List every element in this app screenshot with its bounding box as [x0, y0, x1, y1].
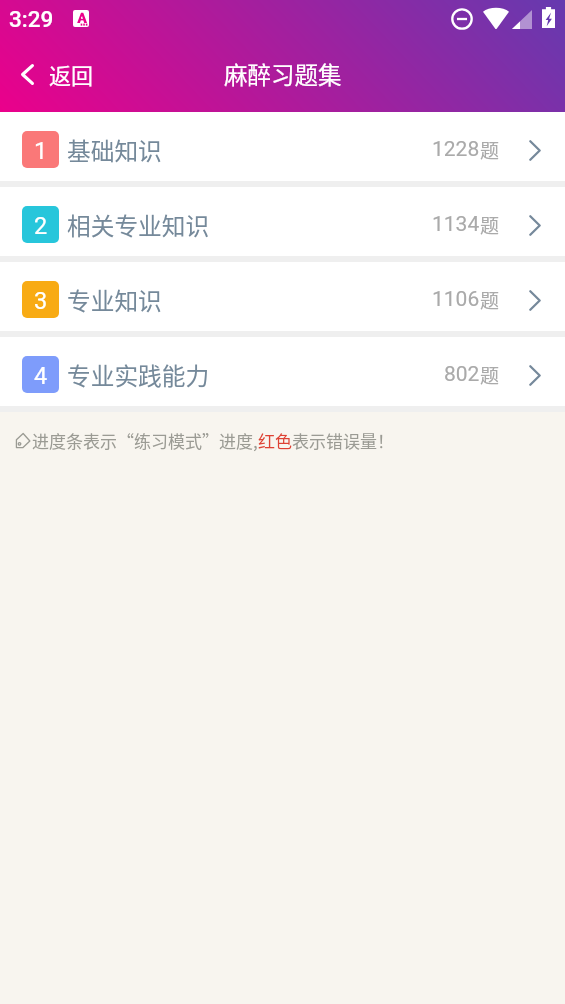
other: Back: [21, 64, 34, 85]
staticText: 专业实践能力: [67, 358, 210, 392]
button[interactable]: 2: [0, 187, 565, 262]
staticText: 基础知识: [67, 133, 162, 167]
staticText: 题: [480, 136, 500, 164]
staticText: 1: [34, 137, 48, 165]
button[interactable]: 1: [0, 112, 565, 187]
button[interactable]: 3: [0, 262, 565, 337]
staticText: 1134: [432, 212, 480, 237]
staticText: 3:29: [9, 6, 54, 32]
staticText: 802: [444, 362, 480, 387]
staticText: 专业知识: [67, 283, 162, 317]
staticText: 2: [34, 212, 48, 240]
staticText: 相关专业知识: [67, 208, 210, 242]
staticText: 4: [34, 362, 48, 390]
staticText: 1228: [432, 137, 480, 162]
staticText: 1106: [432, 287, 480, 312]
staticText: 进度条表示“练习模式”进度,: [32, 428, 258, 453]
staticText: 题: [480, 361, 500, 389]
staticText: 红色: [258, 428, 292, 453]
staticText: 题: [480, 286, 500, 314]
staticText: 题: [480, 211, 500, 239]
staticText: 表示错误量！: [292, 428, 394, 453]
button[interactable]: 4: [0, 337, 565, 412]
staticText: 返回: [49, 58, 94, 90]
button[interactable]: Back: [0, 50, 108, 102]
staticText: 麻醉习题集: [224, 57, 342, 91]
staticText: 3: [34, 287, 48, 315]
other: Do not disturb: [451, 8, 473, 30]
